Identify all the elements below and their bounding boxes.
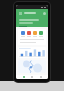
button[interactable]: Shortcut	[32, 31, 38, 37]
button[interactable]: Shortcut	[20, 31, 26, 37]
button[interactable]: Shortcut	[26, 31, 32, 37]
button[interactable]: Menu	[18, 11, 22, 15]
button[interactable]: Shortcut	[38, 31, 44, 37]
button[interactable]: Shortcut	[18, 29, 46, 45]
button[interactable]: Search	[43, 12, 46, 15]
button[interactable]	[18, 47, 46, 58]
button[interactable]	[18, 60, 46, 73]
